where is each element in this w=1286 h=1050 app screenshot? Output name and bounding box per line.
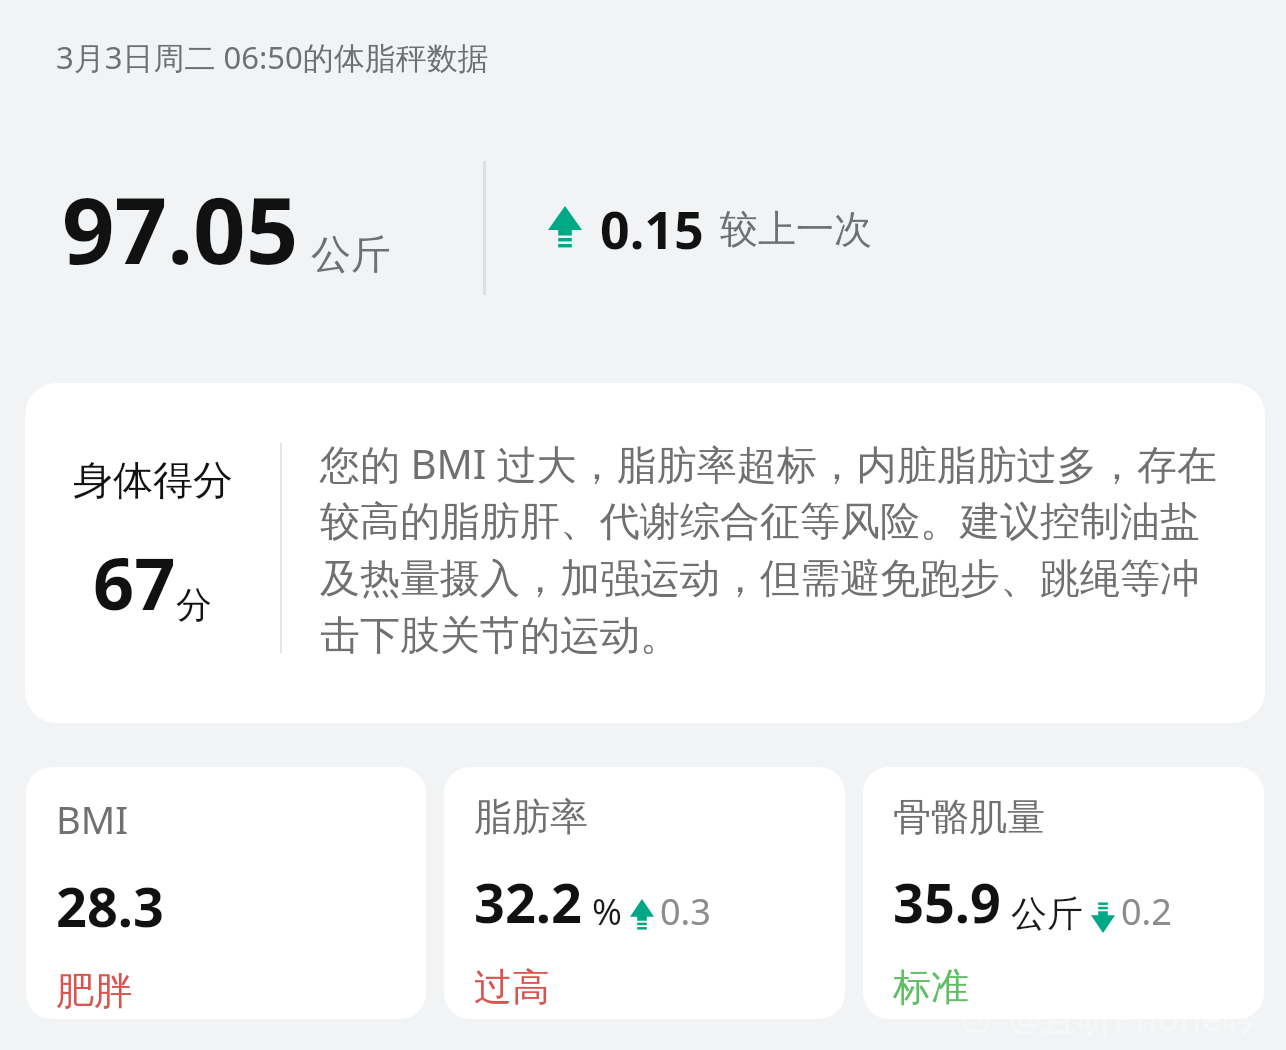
staticText: 较上一次 bbox=[720, 205, 872, 253]
staticText: 3月3日周二 06:50的体脂秤数据 bbox=[56, 36, 489, 78]
other: Increase bbox=[548, 206, 582, 252]
staticText: 28.3 bbox=[56, 869, 164, 943]
staticText: 肥胖 bbox=[56, 967, 132, 1015]
staticText: 0.3 bbox=[660, 887, 711, 936]
staticText: % bbox=[592, 887, 622, 936]
staticText: 较高的脂肪肝、代谢综合征等风险。建议控制油盐 bbox=[320, 496, 1200, 546]
staticText: 97.05 bbox=[62, 166, 299, 291]
staticText: 67 bbox=[93, 533, 176, 631]
staticText: 公斤 bbox=[311, 229, 391, 279]
staticText: 及热量摄入，加强运动，但需避免跑步、跳绳等冲 bbox=[320, 553, 1200, 603]
staticText: 公斤 bbox=[1011, 891, 1083, 936]
staticText: 脂肪率 bbox=[474, 793, 588, 841]
other: Increase bbox=[630, 899, 654, 933]
staticText: 标准 bbox=[893, 963, 969, 1011]
staticText: 击下肢关节的运动。 bbox=[320, 610, 680, 660]
staticText: 0.2 bbox=[1121, 887, 1172, 936]
staticText: BMI bbox=[56, 793, 129, 845]
button[interactable]: 骨骼肌量 bbox=[863, 767, 1264, 1019]
staticText: @且听Phone吟 bbox=[1009, 993, 1258, 1042]
staticText: 过高 bbox=[474, 963, 550, 1011]
button[interactable]: BMI bbox=[26, 767, 426, 1019]
staticText: 分 bbox=[176, 582, 212, 627]
other: Decrease bbox=[1091, 899, 1115, 933]
staticText: 32.2 bbox=[474, 865, 582, 939]
staticText: 35.9 bbox=[893, 865, 1001, 939]
staticText: 您的 BMI 过大，脂肪率超标，内脏脂肪过多，存在 bbox=[320, 436, 1217, 491]
button[interactable]: 脂肪率 bbox=[444, 767, 845, 1019]
staticText: 骨骼肌量 bbox=[893, 793, 1045, 841]
button[interactable]: 身体得分 bbox=[25, 383, 1265, 723]
staticText: 身体得分 bbox=[73, 455, 233, 505]
staticText: 0.15 bbox=[600, 193, 704, 264]
